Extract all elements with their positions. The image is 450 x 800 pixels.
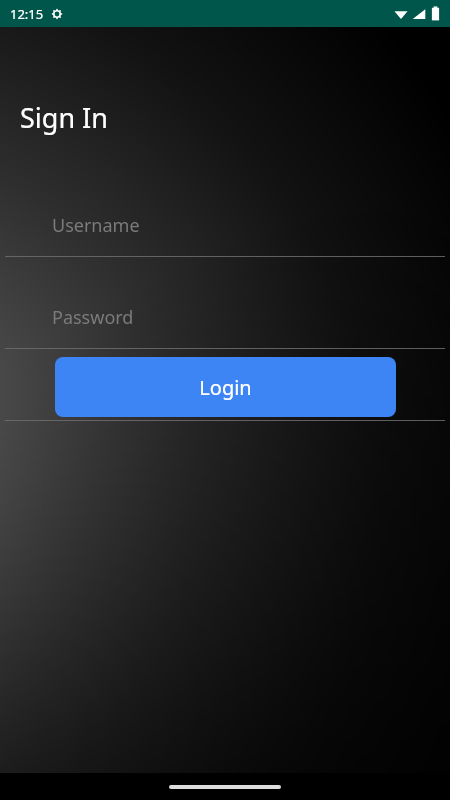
staticText: Username xyxy=(52,213,140,238)
staticText: Login xyxy=(199,374,252,401)
button[interactable]: Login xyxy=(55,357,396,417)
staticText: Sign In xyxy=(20,99,108,136)
staticText: 12:15 xyxy=(10,5,44,23)
button[interactable]: Password xyxy=(0,286,450,348)
button[interactable]: Username xyxy=(0,194,450,256)
staticText: Password xyxy=(52,305,134,330)
